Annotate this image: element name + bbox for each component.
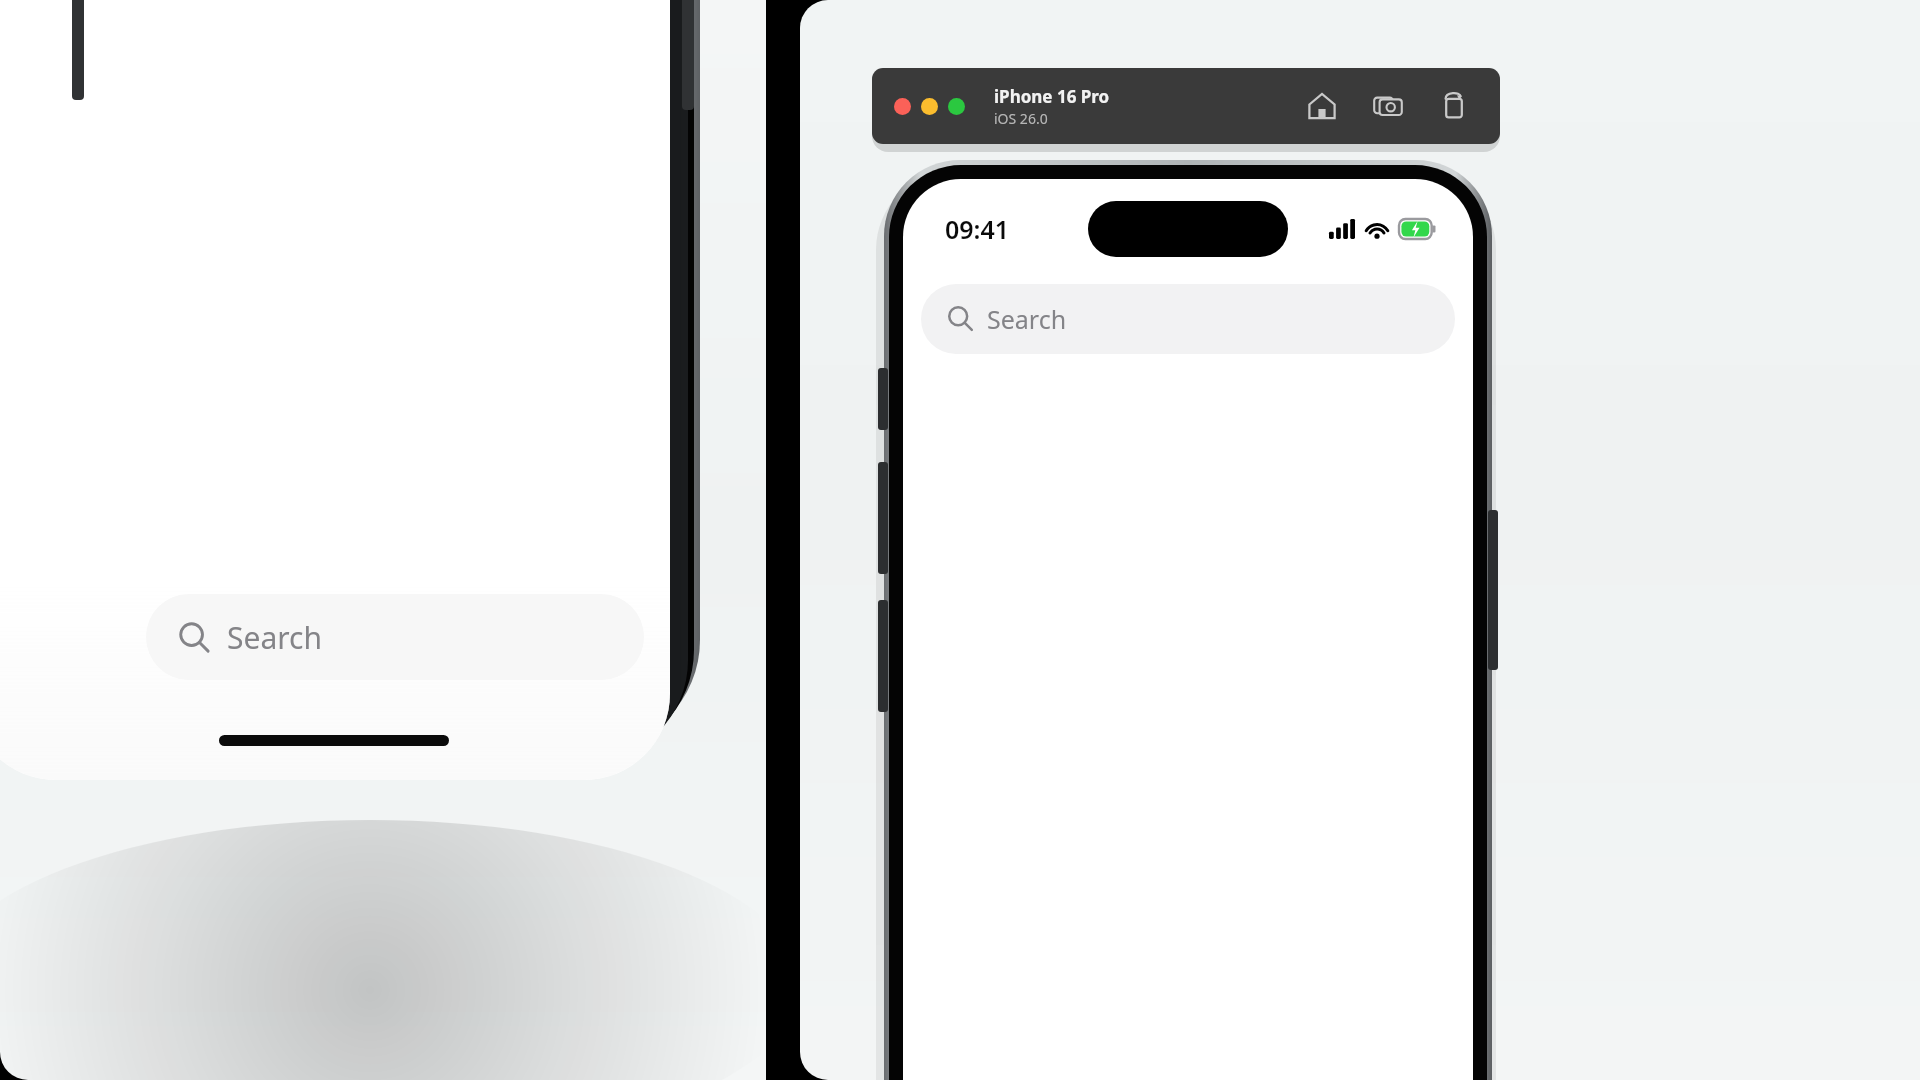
button[interactable]: Rotate (1434, 86, 1474, 126)
button[interactable]: Close (894, 98, 911, 115)
staticText: Search (227, 617, 322, 658)
staticText: Search (987, 302, 1067, 336)
button[interactable]: Zoom (948, 98, 965, 115)
staticText: iOS 26.0 (994, 109, 1048, 128)
button[interactable]: Screenshot (1368, 86, 1408, 126)
button[interactable]: Home (1302, 86, 1342, 126)
button[interactable]: Search (146, 594, 644, 680)
staticText: iPhone 16 Pro (994, 85, 1110, 108)
staticText: 09:41 (945, 212, 1010, 246)
button[interactable]: Search (921, 284, 1455, 354)
button[interactable]: Minimise (921, 98, 938, 115)
